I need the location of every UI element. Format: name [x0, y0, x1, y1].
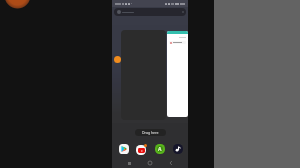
button[interactable]: Recents: [125, 159, 133, 167]
button[interactable]: YouTube: [136, 144, 147, 155]
staticText: Drag here: [142, 130, 159, 135]
button[interactable]: Back: [167, 159, 175, 167]
button[interactable]: App: [155, 144, 165, 154]
staticText: A: [158, 146, 162, 152]
button[interactable]: Floating bubble: [114, 56, 121, 63]
button[interactable]: Play Store: [119, 144, 129, 154]
button[interactable]: [114, 8, 186, 16]
button[interactable]: Drag here: [135, 129, 166, 136]
button[interactable]: Home: [146, 159, 154, 167]
button[interactable]: [167, 31, 188, 117]
button[interactable]: TikTok: [173, 144, 183, 154]
